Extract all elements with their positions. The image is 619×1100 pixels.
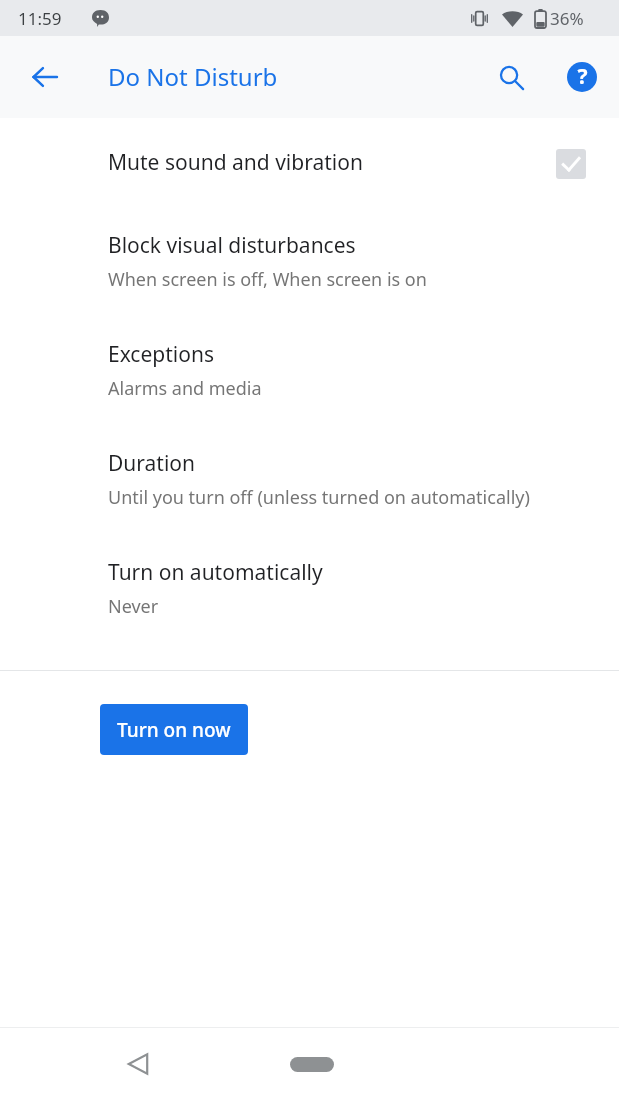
staticText: When screen is off, When screen is on (108, 267, 427, 292)
button[interactable]: Back (114, 1040, 162, 1088)
staticText: ? (577, 62, 588, 91)
button[interactable]: Help (559, 54, 605, 100)
button[interactable]: Back (21, 53, 69, 101)
staticText: 36% (550, 7, 584, 30)
staticText: Alarms and media (108, 376, 262, 401)
button[interactable]: Mute sound and vibration checkbox (556, 149, 586, 179)
button[interactable]: Block visual disturbances (0, 227, 619, 336)
staticText: Mute sound and vibration (108, 148, 363, 177)
staticText: Block visual disturbances (108, 231, 356, 260)
button[interactable]: Turn on now (100, 704, 248, 755)
staticText: Turn on automatically (108, 558, 323, 587)
staticText: Exceptions (108, 340, 214, 369)
button[interactable]: Mute sound and vibration (0, 144, 619, 227)
button[interactable]: Home (277, 1042, 347, 1086)
button[interactable]: Exceptions (0, 336, 619, 445)
staticText: Do Not Disturb (108, 60, 278, 93)
button[interactable]: Search (488, 54, 534, 100)
staticText: Turn on now (117, 717, 231, 743)
button[interactable]: Duration (0, 445, 619, 554)
staticText: Until you turn off (unless turned on aut… (108, 485, 530, 510)
staticText: Never (108, 594, 159, 619)
staticText: 11:59 (18, 7, 62, 30)
button[interactable]: Turn on automatically (0, 554, 619, 663)
staticText: Duration (108, 449, 196, 478)
